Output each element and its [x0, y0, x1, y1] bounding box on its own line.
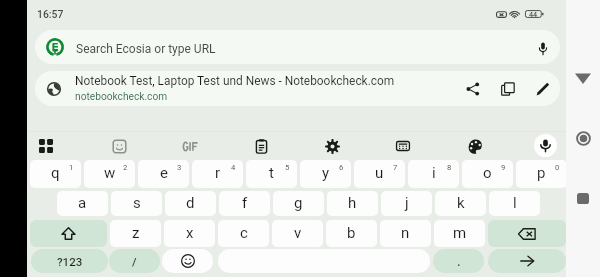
button[interactable]: b [326, 220, 377, 247]
button[interactable]: Share [460, 76, 486, 102]
button[interactable]: o [462, 160, 513, 188]
staticText: 4 [231, 163, 236, 172]
button[interactable]: Settings [319, 133, 345, 159]
button[interactable]: d [165, 191, 216, 216]
staticText: l [513, 194, 517, 212]
staticText: q [51, 164, 60, 182]
button[interactable]: w [84, 160, 135, 188]
button[interactable]: Back [566, 58, 600, 98]
button[interactable]: r [192, 160, 243, 188]
button[interactable]: Apps [33, 133, 59, 159]
button[interactable]: . [433, 249, 484, 273]
staticText: 1 [69, 163, 74, 172]
button[interactable]: e [138, 160, 189, 188]
button[interactable]: Voice input [534, 134, 557, 157]
button[interactable]: ?123 [31, 249, 108, 273]
button[interactable]: / [109, 249, 160, 273]
staticText: w [104, 164, 116, 182]
button[interactable]: f [219, 191, 270, 216]
staticText: f [242, 194, 248, 212]
staticText: j [405, 194, 409, 212]
staticText: 5 [285, 163, 290, 172]
button[interactable]: Edit [530, 76, 556, 102]
button[interactable]: g [273, 191, 324, 216]
staticText: ?123 [57, 255, 83, 268]
button[interactable]: GIF [177, 133, 203, 159]
staticText: / [132, 255, 137, 268]
button[interactable]: z [110, 220, 161, 247]
button[interactable]: Enter [488, 249, 566, 273]
staticText: 0 [555, 163, 560, 172]
button[interactable]: p [516, 160, 567, 188]
button[interactable]: m [434, 220, 485, 247]
button[interactable]: Voice search [530, 35, 556, 61]
staticText: k [457, 194, 465, 212]
staticText: 44 [529, 10, 538, 18]
button[interactable]: k [435, 191, 486, 216]
staticText: m [453, 224, 467, 242]
button[interactable]: l [489, 191, 540, 216]
staticText: g [294, 194, 303, 212]
staticText: p [537, 164, 546, 182]
button[interactable]: s [111, 191, 162, 216]
staticText: x [186, 224, 194, 242]
staticText: . [457, 254, 461, 269]
button[interactable]: n [380, 220, 431, 247]
staticText: d [186, 194, 195, 212]
button[interactable]: Theme [462, 133, 488, 159]
staticText: a [78, 194, 87, 212]
button[interactable]: Copy [495, 76, 521, 102]
button[interactable] [35, 71, 560, 106]
button[interactable]: y [300, 160, 351, 188]
staticText: u [375, 164, 384, 182]
button[interactable]: v [272, 220, 323, 247]
staticText: 9 [501, 163, 506, 172]
button[interactable]: Shift [30, 220, 107, 247]
staticText: i [432, 164, 436, 182]
button[interactable]: i [408, 160, 459, 188]
staticText: 16:57 [37, 8, 64, 20]
staticText: b [347, 224, 356, 242]
staticText: Search Ecosia or type URL [76, 42, 216, 56]
staticText: 2 [123, 163, 128, 172]
button[interactable]: Emoji [162, 249, 213, 273]
button[interactable]: c [218, 220, 269, 247]
staticText: 6 [339, 163, 344, 172]
button[interactable]: Recent apps [566, 178, 600, 218]
staticText: v [294, 224, 302, 242]
button[interactable]: u [354, 160, 405, 188]
button[interactable]: a [57, 191, 108, 216]
button[interactable]: q [30, 160, 81, 188]
button[interactable]: Space [218, 249, 430, 273]
staticText: t [269, 164, 274, 182]
button[interactable]: t [246, 160, 297, 188]
staticText: h [348, 194, 357, 212]
button[interactable]: Stickers [106, 133, 132, 159]
button[interactable]: h [327, 191, 378, 216]
staticText: 3 [177, 163, 182, 172]
button[interactable]: Home [566, 118, 600, 158]
staticText: o [483, 164, 492, 182]
staticText: r [215, 164, 221, 182]
button[interactable]: j [381, 191, 432, 216]
staticText: 8 [447, 163, 452, 172]
staticText: Notebook Test, Laptop Test und News - No… [75, 74, 395, 88]
staticText: notebookcheck.com [75, 91, 168, 103]
button[interactable]: Backspace [488, 220, 566, 247]
staticText: 7 [393, 163, 398, 172]
button[interactable]: Clipboard [248, 133, 274, 159]
button[interactable] [35, 30, 560, 64]
staticText: e [160, 164, 168, 182]
staticText: y [322, 164, 330, 182]
staticText: s [133, 194, 141, 212]
button[interactable]: x [164, 220, 215, 247]
button[interactable]: Numbers [390, 133, 416, 159]
staticText: z [132, 224, 140, 242]
staticText: c [240, 224, 248, 242]
staticText: n [401, 224, 410, 242]
